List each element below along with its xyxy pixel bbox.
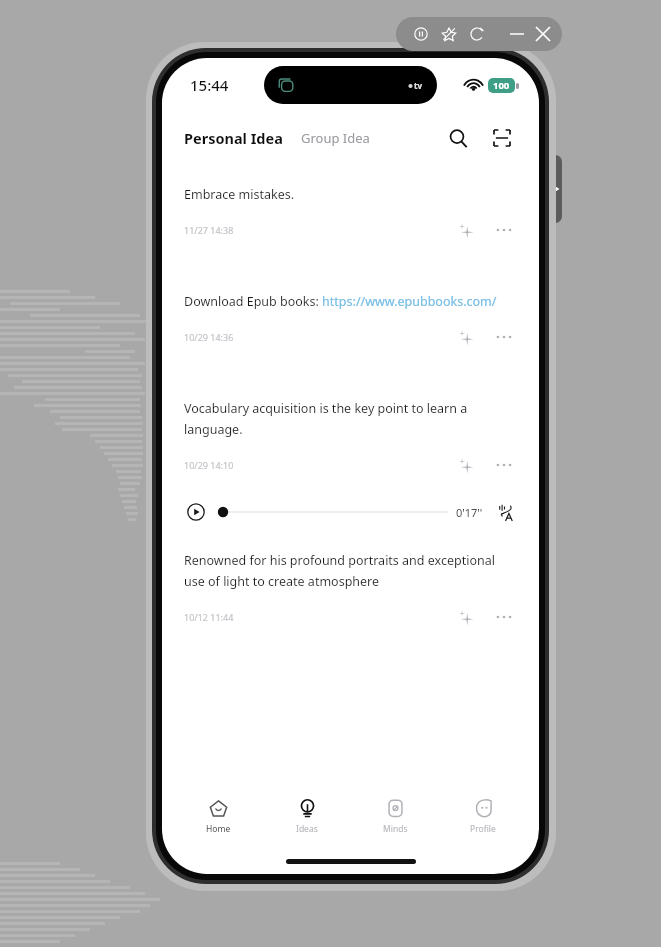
button[interactable]: Pin — [438, 23, 460, 45]
staticText: Vocabulary acquisition is the key point … — [184, 400, 517, 438]
staticText: Embrace mistakes. — [184, 186, 295, 203]
button[interactable]: Minimize — [504, 21, 530, 47]
staticText: Profile — [470, 823, 496, 835]
button[interactable]: More options — [491, 324, 517, 350]
button[interactable]: Vocabulary acquisition is the key point … — [162, 400, 539, 500]
button[interactable]: More options — [491, 604, 517, 630]
button[interactable]: AI assist — [453, 217, 479, 243]
other: Play — [184, 500, 208, 524]
button[interactable]: Transcribe to text — [493, 500, 517, 524]
button[interactable]: Profile — [439, 786, 527, 848]
button[interactable]: History — [466, 23, 488, 45]
staticText: Minds — [383, 823, 408, 835]
button[interactable]: Download Epub books: https://www.epubboo… — [162, 293, 539, 400]
button[interactable]: More options — [491, 217, 517, 243]
staticText: Renowned for his profound portraits and … — [184, 552, 517, 590]
button[interactable]: Renowned for his profound portraits and … — [162, 552, 539, 630]
button[interactable]: Personal Idea — [182, 120, 285, 156]
button[interactable]: Embrace mistakes. — [162, 164, 539, 293]
staticText: 0'17'' — [456, 505, 483, 520]
button[interactable]: Pause — [410, 23, 432, 45]
staticText: Home — [206, 823, 231, 835]
staticText: Group Idea — [301, 129, 370, 147]
staticText: Ideas — [296, 823, 318, 835]
button[interactable]: More options — [491, 452, 517, 478]
button[interactable]: Home — [174, 786, 263, 848]
staticText: 11/27 14:38 — [184, 224, 234, 236]
button[interactable]: Ideas — [263, 786, 351, 848]
button[interactable]: AI assist — [453, 324, 479, 350]
staticText: Download Epub books: https://www.epubboo… — [184, 293, 497, 310]
button[interactable]: Expand panel — [549, 155, 562, 223]
button[interactable]: Group Idea — [299, 121, 372, 155]
staticText: 10/12 11:44 — [184, 611, 234, 623]
button[interactable]: AI assist — [453, 452, 479, 478]
button[interactable]: Scan — [485, 121, 519, 155]
staticText: 10/29 14:36 — [184, 331, 234, 343]
button[interactable]: Minds — [351, 786, 439, 848]
staticText: 15:44 — [190, 75, 229, 95]
staticText: Personal Idea — [184, 128, 283, 148]
button[interactable]: Play — [162, 500, 539, 524]
staticText: tv — [414, 80, 423, 91]
button[interactable]: Search — [441, 121, 475, 155]
staticText: 100 — [493, 79, 510, 92]
staticText: 10/29 14:10 — [184, 459, 234, 471]
button[interactable]: Close — [536, 21, 550, 47]
button[interactable]: AI assist — [453, 604, 479, 630]
